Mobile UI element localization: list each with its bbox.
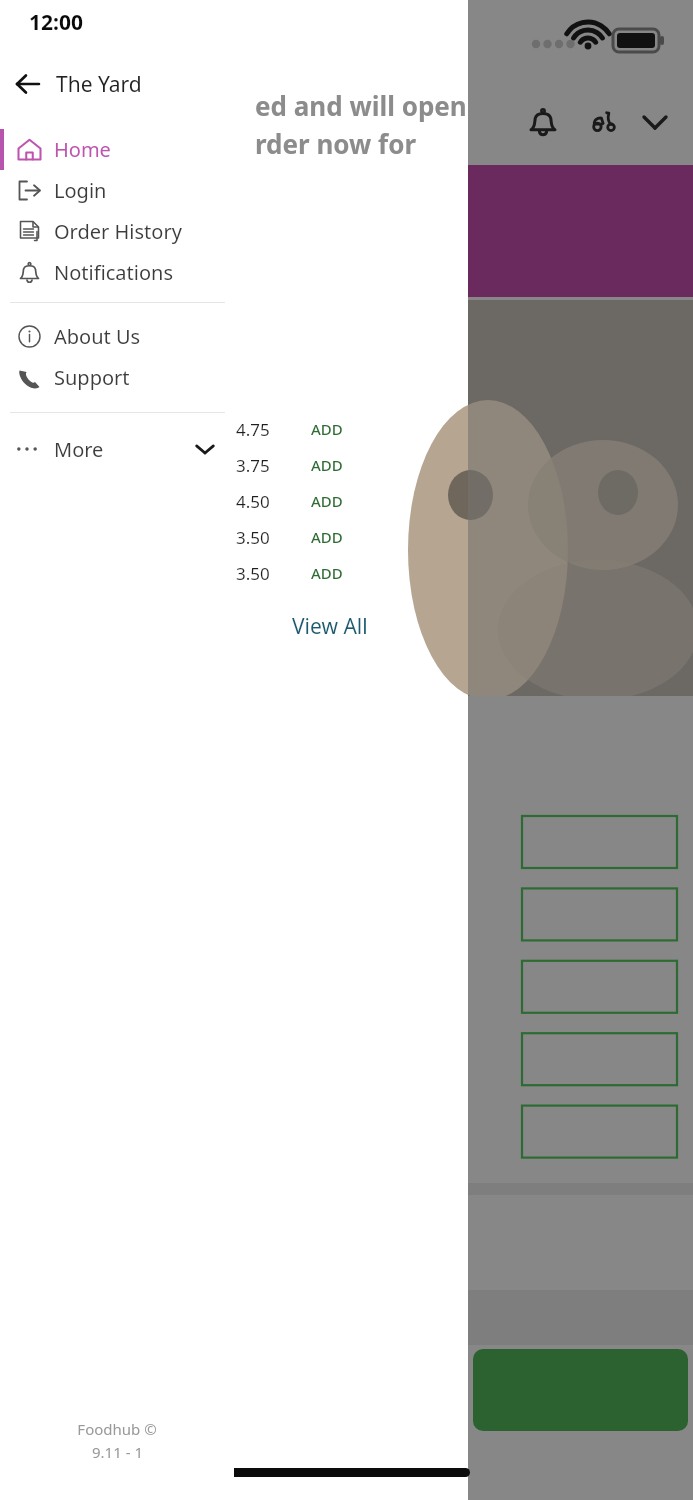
button[interactable]: Notifications bbox=[0, 252, 234, 293]
staticText: Home bbox=[54, 136, 111, 163]
button[interactable]: ADD bbox=[288, 524, 366, 550]
staticText: 3.50 bbox=[236, 526, 270, 549]
button[interactable]: Support bbox=[0, 357, 234, 398]
button[interactable]: ADD bbox=[288, 560, 366, 586]
staticText: The Yard bbox=[56, 70, 142, 99]
staticText: Support bbox=[54, 364, 130, 391]
staticText: rder now for bbox=[255, 126, 417, 161]
staticText: 3.50 bbox=[236, 562, 270, 585]
button[interactable]: Order History bbox=[0, 211, 234, 252]
staticText: More bbox=[54, 436, 104, 463]
staticText: About Us bbox=[54, 323, 141, 350]
staticText: Foodhub © bbox=[77, 1419, 157, 1439]
button[interactable]: ADD bbox=[288, 452, 366, 478]
button[interactable]: View All bbox=[292, 612, 368, 641]
staticText: 4.50 bbox=[236, 490, 270, 513]
staticText: 9.11 - 1 bbox=[92, 1442, 143, 1462]
button[interactable]: Back bbox=[0, 63, 56, 105]
staticText: ADD bbox=[311, 419, 343, 439]
button[interactable]: Login bbox=[0, 170, 234, 211]
staticText: ed and will open bbox=[255, 88, 467, 123]
staticText: ADD bbox=[311, 563, 343, 583]
staticText: ADD bbox=[311, 455, 343, 475]
staticText: ADD bbox=[311, 491, 343, 511]
staticText: 3.75 bbox=[236, 454, 270, 477]
staticText: ADD bbox=[311, 527, 343, 547]
staticText: Login bbox=[54, 177, 107, 204]
staticText: Order History bbox=[54, 218, 182, 245]
button[interactable]: ADD bbox=[288, 488, 366, 514]
staticText: 4.75 bbox=[236, 418, 270, 441]
staticText: Notifications bbox=[54, 259, 173, 286]
button[interactable]: Home bbox=[0, 129, 234, 170]
button[interactable]: More bbox=[0, 423, 234, 475]
button[interactable]: About Us bbox=[0, 316, 234, 357]
staticText: 12:00 bbox=[29, 8, 83, 37]
button[interactable]: ADD bbox=[288, 416, 366, 442]
staticText: View All bbox=[292, 612, 368, 641]
